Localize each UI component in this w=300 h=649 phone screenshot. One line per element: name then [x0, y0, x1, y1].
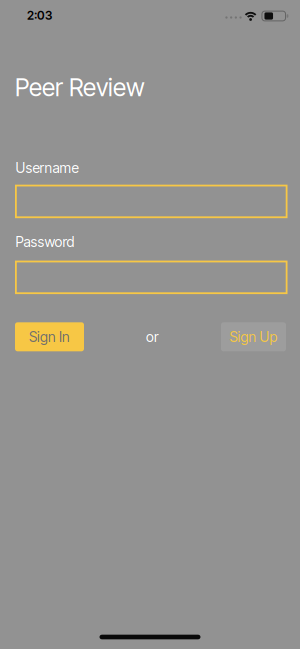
staticText: 2:03 — [27, 8, 52, 23]
staticText: Peer Review — [15, 73, 145, 102]
button[interactable]: Text field — [15, 261, 287, 294]
staticText: Username — [15, 159, 78, 176]
staticText: Sign In — [29, 328, 70, 345]
button[interactable]: Text field — [15, 185, 287, 218]
button[interactable]: Sign In — [15, 322, 84, 351]
staticText: Password — [15, 233, 74, 250]
staticText: or — [146, 328, 159, 345]
button[interactable]: Sign Up — [221, 322, 286, 351]
staticText: Sign Up — [229, 328, 277, 345]
